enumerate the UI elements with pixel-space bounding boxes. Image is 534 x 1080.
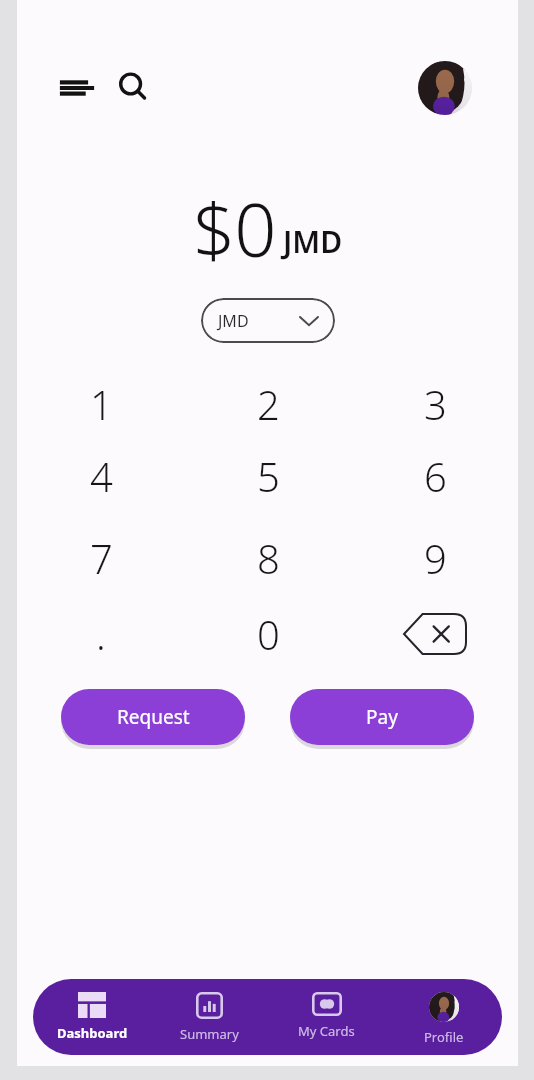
button[interactable]: 0 bbox=[226, 603, 310, 665]
button[interactable]: Profile bbox=[417, 60, 473, 116]
staticText: 5 bbox=[257, 449, 280, 503]
button[interactable]: Summary bbox=[151, 979, 268, 1055]
staticText: 0 bbox=[257, 607, 280, 661]
button[interactable]: 5 bbox=[226, 445, 310, 507]
button[interactable]: Request bbox=[61, 689, 245, 745]
button[interactable]: 2 bbox=[226, 373, 310, 435]
staticText: JMD bbox=[218, 310, 249, 332]
staticText: 9 bbox=[424, 531, 447, 585]
staticText: Dashboard bbox=[57, 1024, 128, 1042]
staticText: $0 bbox=[193, 178, 276, 274]
staticText: 2 bbox=[257, 377, 280, 431]
staticText: My Cards bbox=[298, 1022, 355, 1040]
staticText: 6 bbox=[424, 449, 447, 503]
button[interactable]: 9 bbox=[393, 527, 477, 589]
button[interactable]: 7 bbox=[59, 527, 143, 589]
button[interactable]: My Cards bbox=[268, 979, 385, 1055]
staticText: JMD bbox=[283, 221, 343, 262]
button[interactable]: JMD bbox=[201, 298, 335, 343]
button[interactable]: Backspace bbox=[402, 610, 468, 658]
staticText: 4 bbox=[90, 449, 113, 503]
staticText: 1 bbox=[90, 377, 113, 431]
staticText: . bbox=[96, 607, 106, 661]
staticText: Pay bbox=[366, 704, 398, 730]
staticText: 8 bbox=[257, 531, 280, 585]
button[interactable]: 6 bbox=[393, 445, 477, 507]
button[interactable]: 3 bbox=[393, 373, 477, 435]
button[interactable]: . bbox=[59, 603, 143, 665]
button[interactable]: Search bbox=[108, 62, 158, 112]
button[interactable]: Dashboard bbox=[33, 979, 151, 1055]
staticText: 7 bbox=[90, 531, 113, 585]
button[interactable]: 4 bbox=[59, 445, 143, 507]
staticText: Profile bbox=[424, 1028, 464, 1046]
button[interactable]: Profile bbox=[385, 979, 502, 1055]
button[interactable]: Menu bbox=[53, 64, 101, 112]
button[interactable]: 8 bbox=[226, 527, 310, 589]
staticText: Summary bbox=[180, 1025, 239, 1043]
button[interactable]: 1 bbox=[59, 373, 143, 435]
button[interactable]: Pay bbox=[290, 689, 474, 745]
staticText: 3 bbox=[424, 377, 447, 431]
staticText: Request bbox=[117, 704, 190, 730]
